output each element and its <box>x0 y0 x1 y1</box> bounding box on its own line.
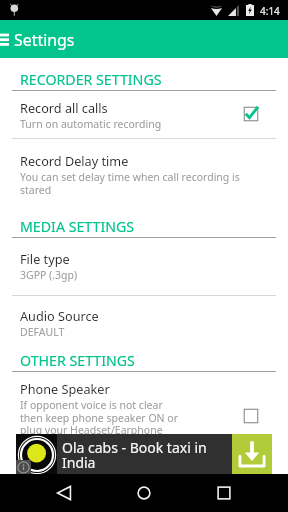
staticText: OTHER SETTINGS <box>20 351 135 370</box>
button[interactable]: File type <box>0 237 288 295</box>
button[interactable]: Home <box>120 474 168 512</box>
staticText: 3GPP (.3gp) <box>20 268 78 282</box>
button[interactable]: Open navigation drawer <box>0 20 16 58</box>
staticText: Audio Source <box>20 307 99 324</box>
staticText: If opponent voice is not clear then keep… <box>20 398 180 437</box>
staticText: Ola cabs - Book taxi in India <box>62 438 214 472</box>
button[interactable]: Ola cabs - Book taxi in India <box>16 434 272 474</box>
staticText: Record Delay time <box>20 152 129 169</box>
button[interactable]: Disabled, checkbox <box>240 405 262 427</box>
staticText: MEDIA SETTINGS <box>20 217 135 236</box>
staticText: File type <box>20 250 70 267</box>
button[interactable]: Record all calls <box>0 91 288 138</box>
staticText: 4:14 <box>260 4 280 18</box>
button[interactable]: Phone Speaker <box>0 374 288 443</box>
staticText: RECORDER SETTINGS <box>20 70 162 89</box>
button[interactable]: Back <box>40 474 88 512</box>
staticText: Settings <box>14 29 75 51</box>
button[interactable]: Install <box>232 434 272 474</box>
button[interactable]: Record Delay time <box>0 143 288 206</box>
staticText: Phone Speaker <box>20 380 110 397</box>
button[interactable]: Audio Source <box>0 294 288 352</box>
button[interactable]: Enabled, checkbox <box>240 103 262 125</box>
staticText: Turn on automatic recording <box>20 117 162 131</box>
button[interactable]: Recent apps <box>200 474 248 512</box>
staticText: Record all calls <box>20 99 108 116</box>
staticText: DEFAULT <box>20 325 65 339</box>
staticText: You can set delay time when call recordi… <box>20 170 248 197</box>
